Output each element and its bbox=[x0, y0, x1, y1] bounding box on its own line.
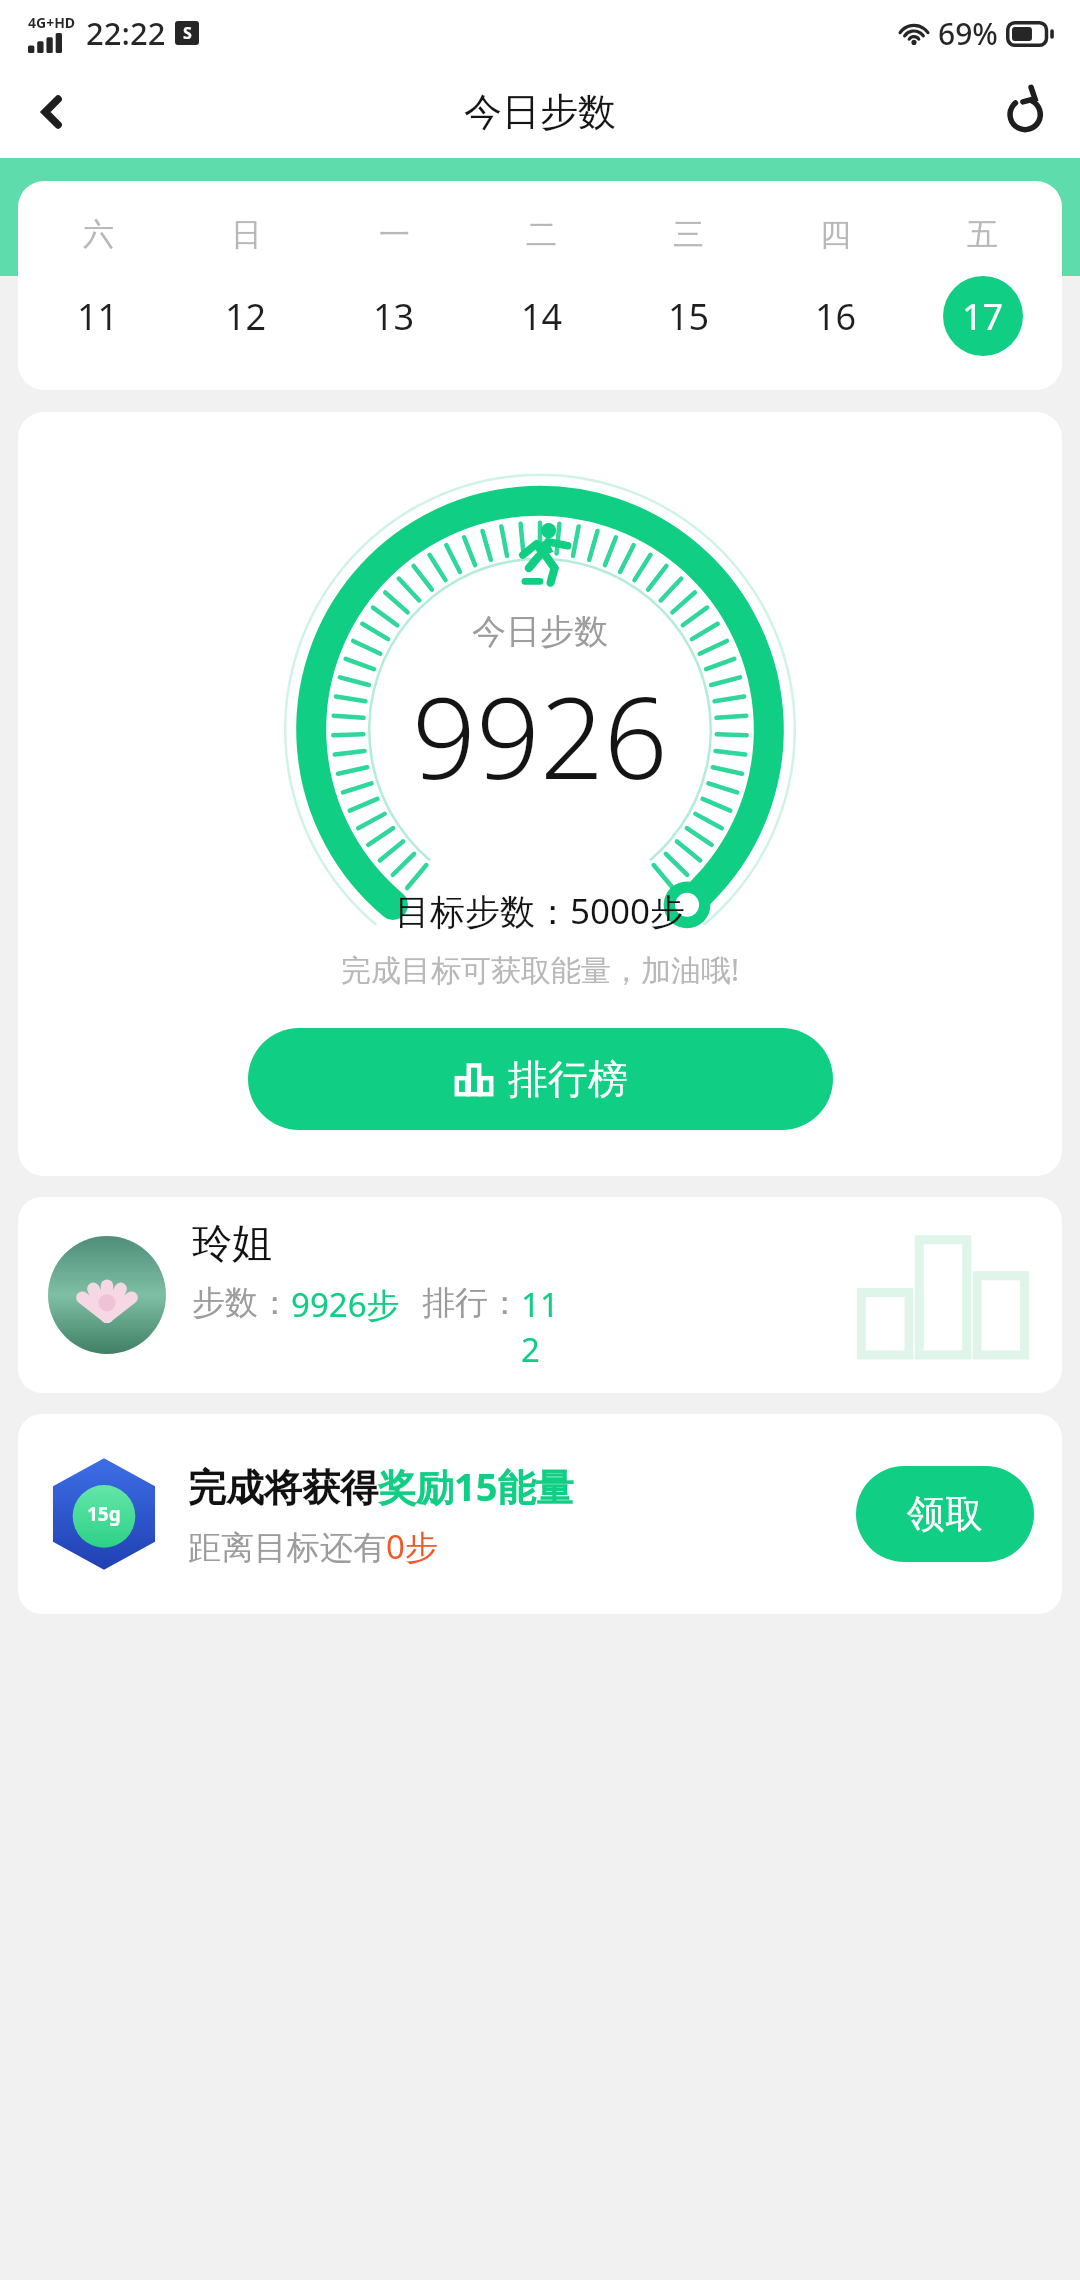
staticText: 排行： bbox=[422, 1282, 521, 1324]
staticText: 步数： bbox=[192, 1282, 291, 1324]
staticText: 12 bbox=[225, 292, 267, 341]
staticText: 玲姐 bbox=[192, 1218, 272, 1268]
button[interactable]: Back bbox=[16, 76, 88, 148]
staticText: 69% bbox=[938, 13, 998, 54]
staticText: 今日步数 bbox=[472, 610, 608, 653]
staticText: 三 bbox=[673, 215, 704, 254]
staticText: 领取 bbox=[907, 1490, 983, 1538]
staticText: 六 bbox=[83, 215, 114, 254]
staticText: 完成目标可获取能量，加油哦! bbox=[341, 949, 740, 990]
staticText: 距离目标还有0步 bbox=[188, 1524, 438, 1569]
staticText: 今日步数 bbox=[464, 88, 616, 136]
staticText: 一 bbox=[379, 215, 410, 254]
staticText: 排行榜 bbox=[508, 1054, 628, 1104]
staticText: 目标步数：5000步 bbox=[395, 887, 686, 935]
button[interactable]: 11 bbox=[24, 276, 172, 356]
staticText: S bbox=[183, 22, 192, 44]
staticText: 112 bbox=[521, 1282, 569, 1372]
button[interactable]: 15 bbox=[615, 276, 762, 356]
button[interactable]: 16 bbox=[762, 276, 909, 356]
staticText: 14 bbox=[521, 292, 563, 341]
button[interactable]: 玲姐 bbox=[18, 1197, 1062, 1393]
button[interactable]: 14 bbox=[468, 276, 615, 356]
staticText: 15g bbox=[87, 1501, 121, 1527]
staticText: 五 bbox=[967, 215, 998, 254]
staticText: 4G+HD bbox=[28, 13, 76, 32]
button[interactable]: 17 bbox=[909, 276, 1056, 356]
staticText: 四 bbox=[820, 215, 851, 254]
button[interactable]: 13 bbox=[320, 276, 468, 356]
staticText: 13 bbox=[373, 292, 415, 341]
staticText: 9926步 bbox=[291, 1282, 400, 1327]
staticText: 二 bbox=[526, 215, 557, 254]
button[interactable]: 排行榜 bbox=[248, 1028, 833, 1130]
button[interactable]: Share bbox=[990, 76, 1062, 148]
button[interactable]: 领取 bbox=[856, 1466, 1034, 1562]
staticText: 22:22 bbox=[86, 12, 166, 54]
staticText: 16 bbox=[815, 292, 857, 341]
staticText: 日 bbox=[231, 215, 262, 254]
staticText: 15 bbox=[668, 292, 710, 341]
staticText: 11 bbox=[77, 292, 119, 341]
button[interactable]: 12 bbox=[172, 276, 320, 356]
staticText: 9926 bbox=[412, 659, 668, 812]
staticText: 17 bbox=[962, 292, 1004, 341]
staticText: 完成将获得奖励15能量 bbox=[188, 1460, 574, 1512]
